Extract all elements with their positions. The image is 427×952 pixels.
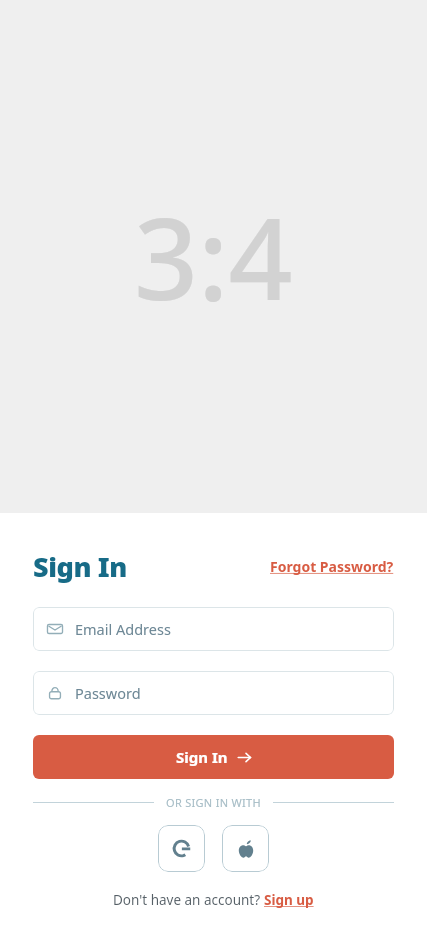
button[interactable]: Password bbox=[33, 671, 394, 715]
button[interactable]: Sign In bbox=[33, 735, 394, 779]
staticText: Sign In bbox=[176, 747, 228, 767]
button[interactable]: Forgot Password? bbox=[270, 553, 394, 580]
staticText: Email Address bbox=[75, 619, 171, 639]
staticText: Password bbox=[75, 683, 141, 703]
staticText: Sign up bbox=[264, 891, 314, 909]
button[interactable]: Sign in with Google bbox=[158, 825, 205, 872]
staticText: Don't have an account? bbox=[113, 891, 264, 909]
staticText: Forgot Password? bbox=[270, 557, 394, 576]
staticText: 3:4 bbox=[134, 180, 293, 333]
button[interactable]: Sign up bbox=[264, 891, 314, 909]
button[interactable]: Email Address bbox=[33, 607, 394, 651]
staticText: Sign In bbox=[33, 548, 127, 585]
button[interactable]: Sign in with Apple bbox=[222, 825, 269, 872]
staticText: OR SIGN IN WITH bbox=[166, 795, 261, 810]
